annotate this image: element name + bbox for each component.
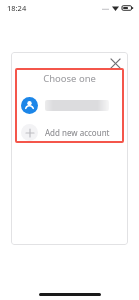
button[interactable] [15, 94, 124, 116]
staticText: Choose one [43, 72, 96, 85]
button[interactable]: Add new account [15, 121, 124, 143]
button[interactable]: Close [106, 54, 124, 72]
staticText: Add new account [45, 127, 110, 138]
staticText: 18:24 [7, 3, 27, 13]
